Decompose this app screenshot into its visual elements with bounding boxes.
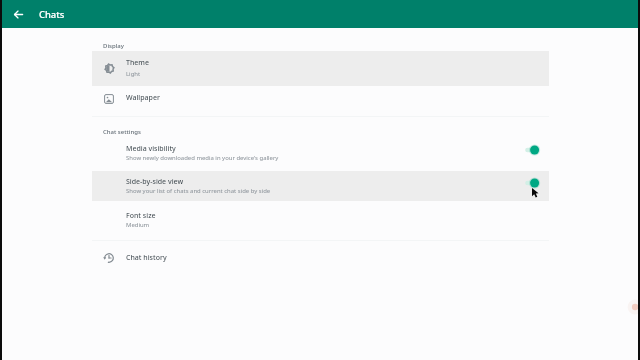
button[interactable]: Font size	[92, 204, 549, 234]
staticText: Show your list of chats and current chat…	[126, 187, 271, 195]
staticText: Theme	[126, 58, 149, 68]
button[interactable]: Theme	[92, 51, 549, 86]
staticText: Medium	[126, 221, 150, 229]
staticText: Wallpaper	[126, 93, 160, 103]
staticText: Light	[126, 70, 141, 78]
button[interactable]: Back	[9, 4, 29, 24]
button[interactable]: Chat history	[92, 245, 549, 271]
staticText: Media visibility	[126, 144, 176, 154]
staticText: Font size	[126, 211, 156, 221]
button[interactable]: Side-by-side view	[92, 171, 549, 201]
staticText: Chats	[39, 8, 65, 21]
button[interactable]: Media visibility	[92, 141, 549, 171]
staticText: Side-by-side view	[126, 177, 184, 187]
staticText: Show newly downloaded media in your devi…	[126, 154, 279, 162]
staticText: Chat history	[126, 253, 167, 263]
staticText: Chat settings	[103, 128, 141, 136]
button[interactable]: Toggle switch, on	[524, 144, 540, 156]
button[interactable]: Toggle switch, on	[524, 177, 540, 189]
staticText: Display	[103, 42, 124, 50]
button[interactable]: Wallpaper	[92, 86, 549, 116]
